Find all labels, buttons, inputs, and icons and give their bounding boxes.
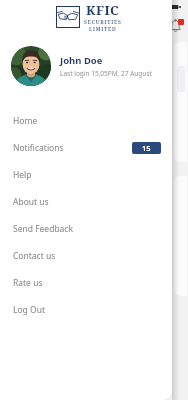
button[interactable]: John Doe [0,46,172,86]
staticText: SECURITIES [84,19,122,26]
button[interactable]: Log Out [0,296,172,323]
button[interactable]: Help [0,161,172,188]
staticText: Send Feedback [13,223,73,235]
staticText: Log Out [13,304,45,316]
staticText: About us [13,196,49,208]
staticText: Home [13,115,38,127]
staticText: Last login 15.05PM, 27 August [60,69,152,78]
button[interactable]: Notifications [0,134,172,161]
staticText: LIMITED [89,26,117,33]
staticText: KFIC [86,1,120,19]
staticText: Rate us [13,277,43,289]
button[interactable]: Notifications [168,18,184,34]
staticText: Help [13,169,32,181]
button[interactable]: Contact us [0,242,172,269]
staticText: 15 [142,143,151,153]
button[interactable]: Home [0,107,172,134]
button[interactable]: Rate us [0,269,172,296]
button[interactable]: About us [0,188,172,215]
staticText: John Doe [60,54,103,67]
staticText: Contact us [13,250,56,262]
staticText: Notifications [13,142,64,154]
button[interactable]: Send Feedback [0,215,172,242]
